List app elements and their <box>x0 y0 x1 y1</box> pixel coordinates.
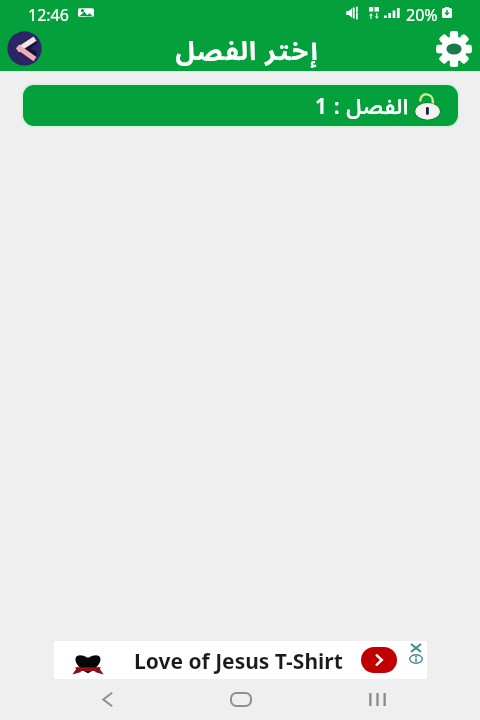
button[interactable]: Close ad <box>410 643 422 653</box>
button[interactable]: Home <box>219 679 263 720</box>
button[interactable]: Ad info <box>409 654 423 664</box>
staticText: 12:46 <box>28 4 69 26</box>
staticText: إختر الفصل <box>175 24 319 79</box>
button[interactable]: الفصل : 1 <box>21 83 460 128</box>
button[interactable]: Back <box>2 26 46 70</box>
button[interactable]: Settings <box>436 31 472 67</box>
button[interactable]: Recent apps <box>355 679 399 720</box>
button[interactable]: Open ad <box>361 647 397 673</box>
staticText: Love of Jesus T-Shirt <box>134 647 343 676</box>
staticText: 20% <box>406 4 438 26</box>
staticText: الفصل : 1 <box>315 85 409 126</box>
button[interactable]: Back <box>85 679 129 720</box>
